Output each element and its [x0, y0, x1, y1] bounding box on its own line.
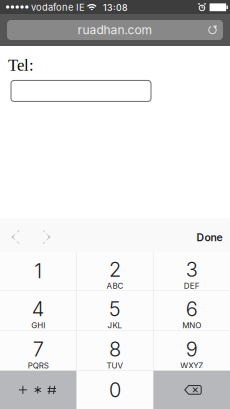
staticText: ABC [106, 281, 123, 291]
button[interactable]: 3 [154, 252, 230, 290]
staticText: TUV [106, 361, 123, 370]
staticText: 0 [109, 378, 121, 402]
staticText: WXYZ [180, 361, 203, 370]
button[interactable]: Symbols [0, 371, 77, 409]
staticText: 3 [186, 257, 198, 281]
button[interactable]: 6 [154, 291, 230, 331]
button[interactable]: 7 [0, 331, 76, 370]
button[interactable]: 9 [154, 331, 230, 370]
button[interactable]: 8 [77, 331, 153, 370]
staticText: 1 [34, 259, 42, 283]
button[interactable]: 0 [77, 371, 153, 409]
staticText: GHI [31, 321, 45, 330]
button[interactable]: 5 [77, 291, 153, 331]
staticText: DEF [184, 281, 200, 291]
button[interactable]: Next field [31, 218, 62, 252]
button[interactable]: Previous field [0, 218, 31, 252]
staticText: Tel: [8, 56, 34, 74]
staticText: 4 [32, 297, 45, 321]
staticText: ruadhan.com [77, 23, 152, 37]
staticText: 7 [33, 337, 44, 361]
button[interactable]: 2 [77, 252, 153, 290]
staticText: MNO [182, 321, 201, 330]
button[interactable]: Done [189, 218, 230, 252]
staticText: 2 [109, 257, 121, 281]
staticText: 13:08 [103, 2, 128, 13]
staticText: Done [196, 231, 222, 244]
button[interactable]: 4 [0, 291, 76, 331]
staticText: vodafone IE [31, 2, 85, 13]
staticText: PQRS [28, 361, 49, 370]
staticText: 5 [109, 297, 121, 321]
staticText: 6 [186, 297, 198, 321]
staticText: 9 [186, 337, 198, 361]
staticText: JKL [107, 321, 122, 330]
button[interactable]: 1 [0, 252, 76, 290]
button[interactable]: ruadhan.com [0, 20, 230, 40]
button[interactable]: Delete [153, 371, 230, 409]
staticText: 8 [109, 337, 121, 361]
